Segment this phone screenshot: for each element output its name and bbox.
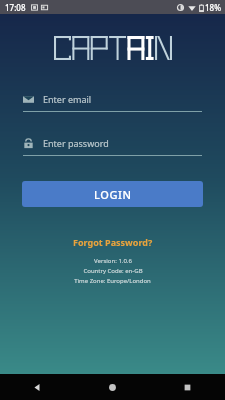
- staticText: 17:08: [5, 2, 26, 13]
- other: Password: [23, 138, 34, 149]
- button[interactable]: LOGIN: [22, 181, 203, 207]
- button[interactable]: Home: [75, 374, 150, 400]
- staticText: Country Code: en-GB: [83, 267, 143, 275]
- button[interactable]: Recent apps: [150, 374, 225, 400]
- staticText: Enter email: [43, 93, 92, 105]
- other: Email: [23, 94, 34, 105]
- button[interactable]: Forgot Password?: [67, 234, 159, 250]
- staticText: Enter password: [43, 137, 109, 149]
- staticText: Forgot Password?: [73, 236, 153, 248]
- button[interactable]: Back: [0, 374, 75, 400]
- button[interactable]: Email: [23, 90, 202, 112]
- button[interactable]: Password: [23, 134, 202, 156]
- staticText: Time Zone: Europe/London: [74, 277, 151, 285]
- staticText: Version: 1.0.6: [94, 257, 132, 265]
- staticText: 18%: [205, 2, 221, 13]
- staticText: LOGIN: [94, 187, 132, 202]
